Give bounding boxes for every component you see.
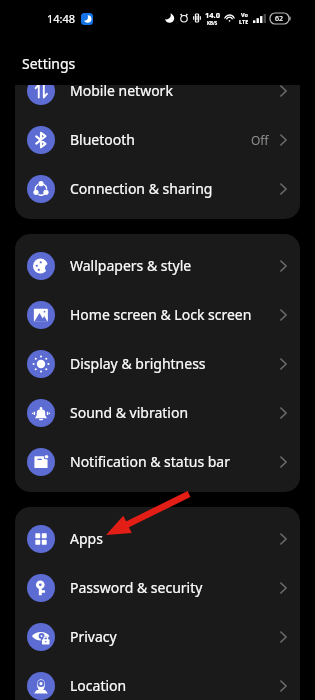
button[interactable]: Mobile network [15, 85, 300, 115]
staticText: 14:48 [47, 11, 76, 26]
staticText: 14.0 [205, 10, 220, 20]
button[interactable]: Display & brightness [15, 339, 300, 388]
button[interactable]: Privacy [15, 612, 300, 661]
button[interactable]: Apps [15, 514, 300, 563]
button[interactable]: Home screen & Lock screen [15, 290, 300, 339]
button[interactable]: Notification & status bar [15, 437, 300, 486]
staticText: Sound & vibration [70, 403, 189, 422]
staticText: Wallpapers & style [70, 256, 192, 275]
button[interactable]: Wallpapers & style [15, 241, 300, 290]
button[interactable]: Password & security [15, 563, 300, 612]
staticText: Connection & sharing [70, 179, 213, 198]
staticText: Home screen & Lock screen [70, 305, 252, 324]
button[interactable]: Connection & sharing [15, 164, 300, 213]
staticText: Password & security [70, 578, 203, 597]
staticText: Apps [70, 529, 103, 548]
staticText: Mobile network [70, 85, 173, 100]
staticText: Settings [22, 54, 76, 73]
staticText: Display & brightness [70, 354, 206, 373]
button[interactable]: Sound & vibration [15, 388, 300, 437]
staticText: Off [251, 132, 269, 148]
staticText: LTE [239, 18, 249, 25]
staticText: Notification & status bar [70, 452, 231, 471]
staticText: Privacy [70, 627, 117, 646]
staticText: Location [70, 676, 127, 695]
button[interactable]: Location [15, 661, 300, 700]
staticText: Vo [241, 11, 248, 18]
staticText: Bluetooth [70, 130, 135, 149]
staticText: 62 [275, 14, 284, 24]
staticText: KB/S [207, 20, 218, 26]
button[interactable]: Bluetooth [15, 115, 300, 164]
